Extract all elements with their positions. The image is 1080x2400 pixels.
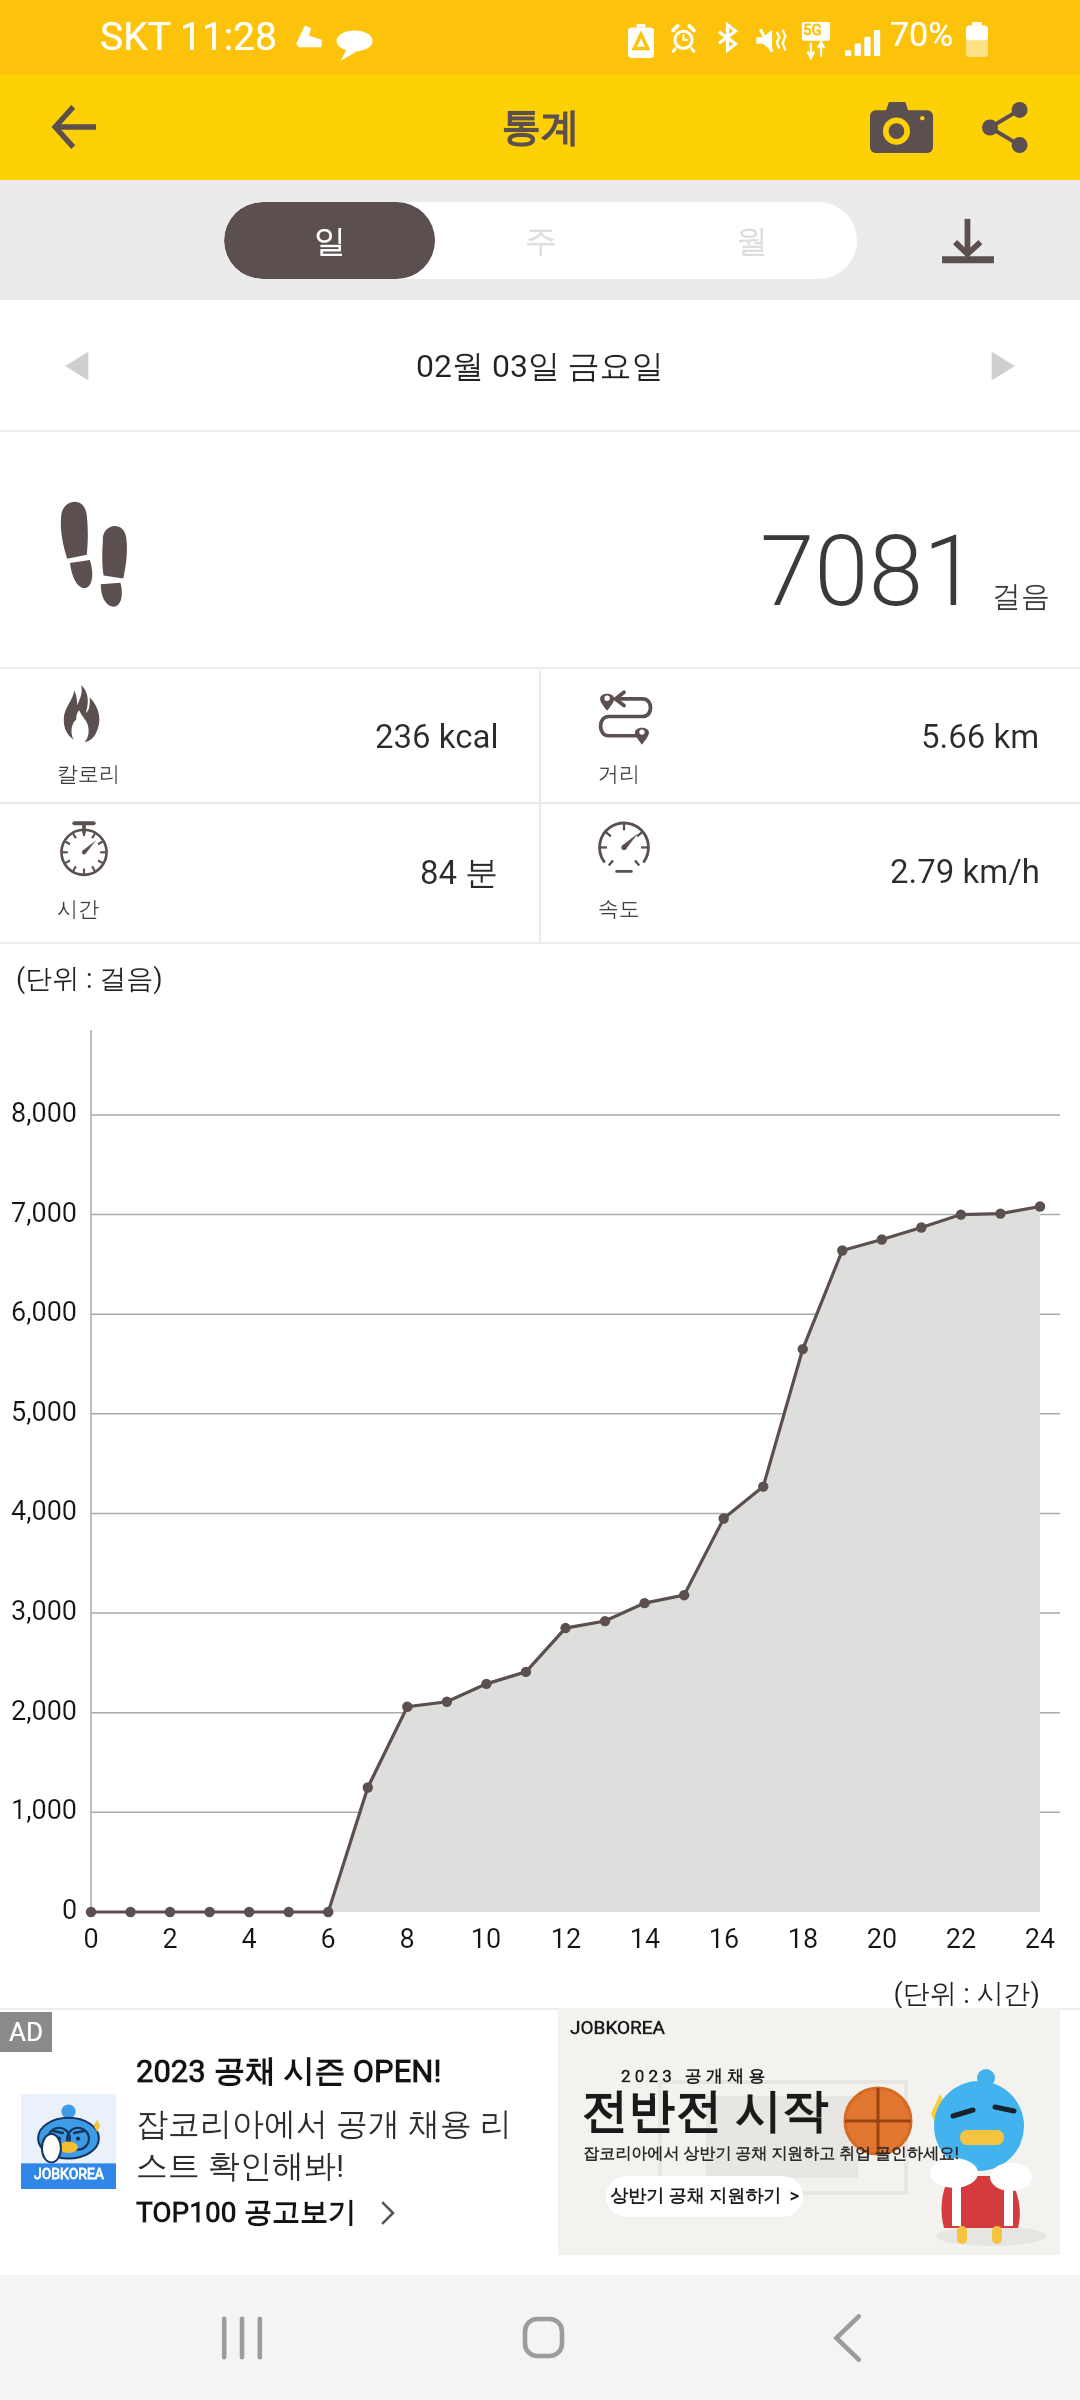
staticText: 걸음	[992, 578, 1050, 615]
staticText: 8,000	[11, 1097, 78, 1129]
button[interactable]: Home	[483, 2275, 603, 2400]
button[interactable]: Share	[960, 82, 1050, 172]
staticText: JOBKOREA	[34, 2166, 104, 2182]
staticText: 1,000	[11, 1794, 78, 1826]
staticText: TOP100 공고보기	[136, 2195, 356, 2230]
staticText: 12	[536, 1923, 596, 1955]
button[interactable]: Advertisement	[558, 2008, 1060, 2255]
staticText: 시간	[57, 896, 99, 922]
staticText: 4,000	[11, 1495, 78, 1527]
staticText: 상반기 공채 지원하기 >	[610, 2185, 800, 2208]
button[interactable]: 거리	[541, 669, 1080, 800]
staticText: 84 분	[420, 852, 499, 894]
staticText: 통계	[501, 103, 579, 152]
button[interactable]: 칼로리	[0, 669, 539, 800]
staticText: 주	[525, 221, 557, 261]
staticText: 16	[694, 1923, 754, 1955]
staticText: 5G	[803, 21, 822, 39]
button[interactable]: 시간	[0, 804, 539, 944]
staticText: (단위 : 시간)	[700, 1977, 1040, 2011]
staticText: 7,000	[11, 1197, 78, 1229]
staticText: SKT 11:28	[100, 14, 277, 60]
button[interactable]: 2023 공채 시즌 OPEN!	[136, 2052, 528, 2242]
staticText: 2	[140, 1923, 200, 1955]
button[interactable]: Back	[787, 2275, 907, 2400]
staticText: JOBKOREA	[570, 2016, 665, 2038]
button[interactable]: Back	[29, 82, 119, 172]
button[interactable]: 상반기 공채 지원하기 >	[606, 2176, 803, 2217]
staticText: 24	[1010, 1923, 1070, 1955]
staticText: 8	[377, 1923, 437, 1955]
staticText: AD	[9, 2017, 44, 2047]
button[interactable]: 속도	[541, 804, 1080, 944]
staticText: 2.79 km/h	[890, 852, 1040, 891]
staticText: (단위 : 걸음)	[16, 962, 163, 996]
staticText: 5.66 km	[921, 717, 1040, 756]
staticText: 18	[773, 1923, 833, 1955]
staticText: 0	[62, 1894, 78, 1926]
staticText: 3,000	[11, 1595, 78, 1627]
staticText: 2 0 2 3 공 개 채 용	[621, 2066, 766, 2087]
staticText: 236 kcal	[375, 717, 499, 756]
button[interactable]: 주	[435, 202, 646, 279]
staticText: 잡코리아에서 공개 채용 리스트 확인해봐!	[136, 2104, 528, 2186]
button[interactable]: Download	[923, 195, 1013, 285]
staticText: 6	[298, 1923, 358, 1955]
staticText: 14	[615, 1923, 675, 1955]
staticText: 20	[852, 1923, 912, 1955]
staticText: 6,000	[11, 1296, 78, 1328]
staticText: 2023 공채 시즌 OPEN!	[136, 2052, 442, 2091]
staticText: 속도	[598, 896, 640, 922]
button[interactable]: Previous day	[38, 326, 118, 406]
staticText: 4	[219, 1923, 279, 1955]
button[interactable]: Next day	[962, 326, 1042, 406]
staticText: 0	[61, 1923, 121, 1955]
staticText: 칼로리	[57, 761, 120, 787]
button[interactable]: 월	[646, 202, 857, 279]
staticText: 22	[931, 1923, 991, 1955]
button[interactable]: Recents	[182, 2275, 302, 2400]
staticText: 70%	[890, 14, 954, 54]
staticText: 일	[314, 221, 346, 261]
staticText: 02월 03일 금요일	[416, 346, 664, 386]
staticText: 2,000	[11, 1695, 78, 1727]
staticText: 전반전 시작	[581, 2083, 829, 2141]
staticText: 월	[736, 221, 768, 261]
staticText: 10	[456, 1923, 516, 1955]
button[interactable]: Camera	[856, 82, 946, 172]
staticText: 7081	[760, 514, 978, 629]
staticText: 5,000	[11, 1396, 78, 1428]
button[interactable]: JobKorea	[21, 2094, 116, 2189]
staticText: 잡코리아에서 상반기 공채 지원하고 취업 골인하세요!	[583, 2144, 959, 2164]
staticText: 거리	[598, 761, 640, 787]
button[interactable]: 일	[224, 202, 435, 279]
